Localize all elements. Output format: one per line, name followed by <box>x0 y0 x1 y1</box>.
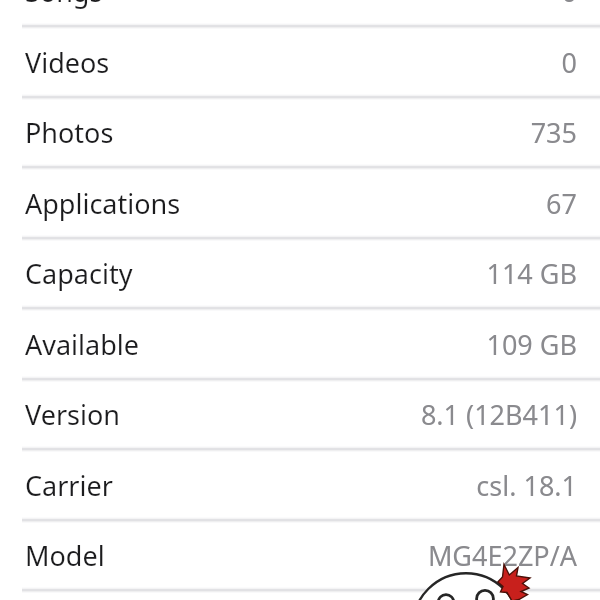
staticText: 109 GB <box>486 326 577 363</box>
staticText: Available <box>25 326 139 363</box>
button[interactable]: Applications <box>0 167 600 238</box>
staticText: 67 <box>546 185 577 222</box>
staticText: Photos <box>25 114 114 151</box>
staticText: csl. 18.1 <box>476 467 577 504</box>
staticText: Version <box>25 396 120 433</box>
staticText: 114 GB <box>486 255 577 292</box>
button[interactable]: Available <box>0 308 600 379</box>
button[interactable]: Carrier <box>0 449 600 520</box>
staticText: 0 <box>561 0 577 10</box>
staticText: 8.1 (12B411) <box>420 396 577 433</box>
button[interactable]: Model <box>0 519 600 590</box>
staticText: Songs <box>25 0 103 10</box>
staticText: Model <box>25 537 105 574</box>
button[interactable]: Version <box>0 378 600 449</box>
staticText: Videos <box>25 44 110 81</box>
staticText: 0 <box>561 44 577 81</box>
staticText: Carrier <box>25 467 113 504</box>
staticText: 735 <box>530 114 577 151</box>
staticText: Applications <box>25 185 181 222</box>
staticText: Capacity <box>25 255 133 292</box>
staticText: MG4E2ZP/A <box>427 537 577 574</box>
button[interactable]: Songs <box>0 0 600 26</box>
button[interactable]: Capacity <box>0 237 600 308</box>
button[interactable]: Videos <box>0 26 600 97</box>
button[interactable]: Photos <box>0 96 600 167</box>
